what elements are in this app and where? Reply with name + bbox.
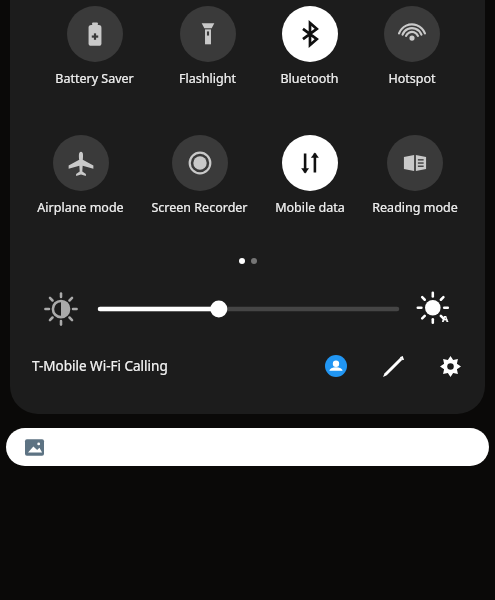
- button[interactable]: Screen Recorder: [151, 135, 248, 216]
- staticText: Battery Saver: [55, 70, 134, 87]
- staticText: Screen Recorder: [151, 199, 248, 216]
- staticText: A: [442, 312, 449, 324]
- staticText: Flashlight: [179, 70, 236, 87]
- button[interactable]: Reading mode: [372, 135, 458, 216]
- staticText: Hotspot: [388, 70, 436, 87]
- button[interactable]: Mobile data: [275, 135, 345, 216]
- button[interactable]: Battery Saver: [55, 6, 134, 87]
- staticText: Mobile data: [275, 199, 345, 216]
- staticText: Reading mode: [372, 199, 458, 216]
- button[interactable]: Airplane mode: [37, 135, 124, 216]
- button[interactable]: Brightness slider: [100, 294, 397, 324]
- button[interactable]: Bluetooth: [280, 6, 339, 87]
- button[interactable]: Settings: [433, 349, 467, 383]
- button[interactable]: Auto brightness: [419, 294, 449, 324]
- button[interactable]: T-Mobile Wi-Fi Calling: [32, 357, 319, 375]
- button[interactable]: Low brightness: [46, 294, 76, 324]
- button[interactable]: Hotspot: [384, 6, 440, 87]
- staticText: T-Mobile Wi-Fi Calling: [32, 357, 168, 375]
- staticText: Bluetooth: [280, 70, 339, 87]
- button[interactable]: Flashlight: [179, 6, 236, 87]
- button[interactable]: [6, 428, 489, 466]
- button[interactable]: Edit tiles: [376, 349, 410, 383]
- button[interactable]: User account: [319, 349, 353, 383]
- staticText: Airplane mode: [37, 199, 124, 216]
